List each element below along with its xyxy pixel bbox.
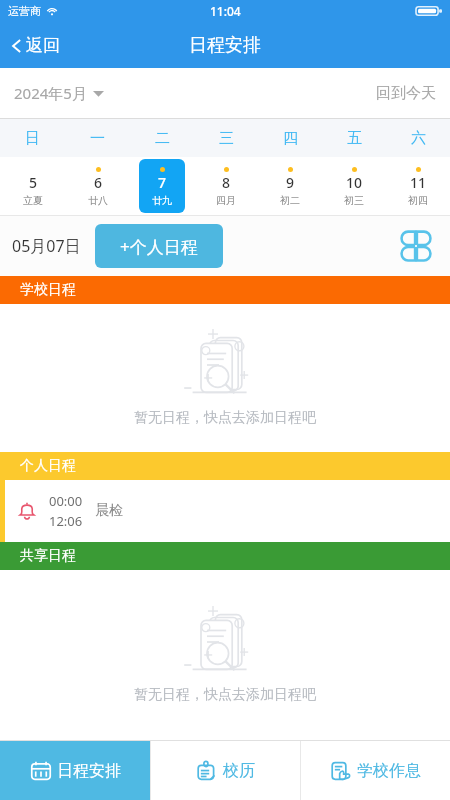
staticText: 00:00 — [49, 492, 83, 510]
staticText: 暂无日程，快点去添加日程吧 — [134, 686, 316, 704]
button[interactable]: 11 — [395, 159, 441, 213]
staticText: 5 — [29, 173, 38, 192]
staticText: 廿九 — [152, 194, 172, 207]
staticText: 学校日程 — [20, 281, 76, 299]
button[interactable]: 2024年5月 — [14, 77, 104, 109]
staticText: 05月07日 — [12, 235, 81, 257]
button[interactable]: 更多 — [394, 224, 438, 268]
staticText: 三 — [219, 129, 234, 148]
staticText: 校历 — [223, 761, 255, 781]
staticText: 12:06 — [49, 512, 83, 530]
staticText: 个人日程 — [20, 457, 76, 475]
staticText: 学校作息 — [357, 761, 421, 781]
button[interactable]: 日程安排 — [0, 741, 150, 800]
staticText: 8 — [222, 173, 231, 192]
button[interactable]: 回到今天 — [376, 78, 436, 109]
button[interactable]: 6 — [75, 159, 121, 213]
button[interactable]: 7 — [139, 159, 185, 213]
button[interactable]: +个人日程 — [95, 224, 223, 268]
staticText: 晨检 — [95, 502, 123, 520]
staticText: 11:04 — [210, 3, 241, 19]
staticText: 2024年5月 — [14, 83, 87, 103]
button[interactable]: 10 — [331, 159, 377, 213]
staticText: 四 — [283, 129, 298, 148]
staticText: 运营商 — [8, 4, 41, 18]
staticText: 共享日程 — [20, 547, 76, 565]
staticText: 日程安排 — [189, 34, 261, 57]
staticText: 廿八 — [88, 194, 108, 207]
staticText: 7 — [158, 173, 167, 192]
button[interactable]: 9 — [267, 159, 313, 213]
staticText: 初三 — [344, 194, 364, 207]
staticText: 一 — [90, 129, 105, 148]
staticText: 日程安排 — [57, 761, 121, 781]
button[interactable]: 学校作息 — [301, 741, 450, 800]
staticText: 返回 — [26, 35, 60, 56]
staticText: 二 — [155, 129, 170, 148]
staticText: +个人日程 — [120, 235, 198, 258]
staticText: 10 — [346, 173, 363, 192]
staticText: 四月 — [216, 194, 236, 207]
button[interactable]: 返回 — [0, 29, 72, 62]
staticText: 日 — [25, 129, 40, 148]
staticText: 11 — [410, 173, 427, 192]
staticText: 暂无日程，快点去添加日程吧 — [134, 409, 316, 427]
staticText: 6 — [94, 173, 103, 192]
staticText: 初四 — [408, 194, 428, 207]
staticText: 六 — [411, 129, 426, 148]
staticText: 初二 — [280, 194, 300, 207]
button[interactable]: 校历 — [151, 741, 300, 800]
button[interactable]: 8 — [203, 159, 249, 213]
staticText: 立夏 — [23, 194, 43, 207]
staticText: 9 — [286, 173, 295, 192]
button[interactable]: 5 — [10, 159, 56, 213]
button[interactable]: 00:00 — [0, 480, 450, 542]
staticText: 五 — [347, 129, 362, 148]
